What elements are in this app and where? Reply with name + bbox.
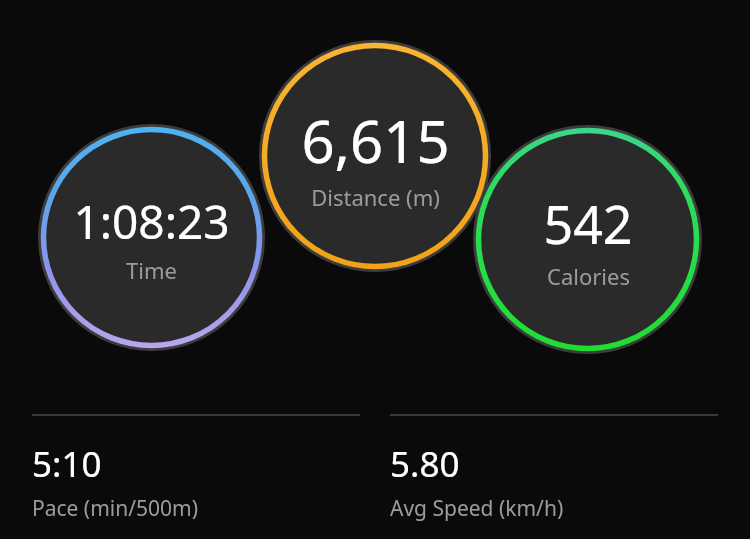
staticText: 5.80 (390, 440, 460, 488)
staticText: Calories (547, 261, 630, 291)
staticText: 6,615 (301, 101, 450, 180)
staticText: 542 (543, 188, 633, 259)
staticText: Pace (min/500m) (32, 494, 198, 523)
staticText: Distance (m) (311, 182, 440, 212)
button[interactable]: Distance 6,615 metres (259, 40, 491, 272)
button[interactable]: Calories 542 (473, 125, 702, 354)
button[interactable]: 5:10 (32, 414, 360, 523)
staticText: 5:10 (32, 440, 102, 488)
staticText: Time (126, 255, 177, 285)
staticText: 1:08:23 (73, 190, 230, 253)
button[interactable]: 5.80 (390, 414, 718, 523)
staticText: Avg Speed (km/h) (390, 494, 564, 523)
button[interactable]: Time 1 hour 8 minutes 23 seconds (38, 124, 265, 351)
